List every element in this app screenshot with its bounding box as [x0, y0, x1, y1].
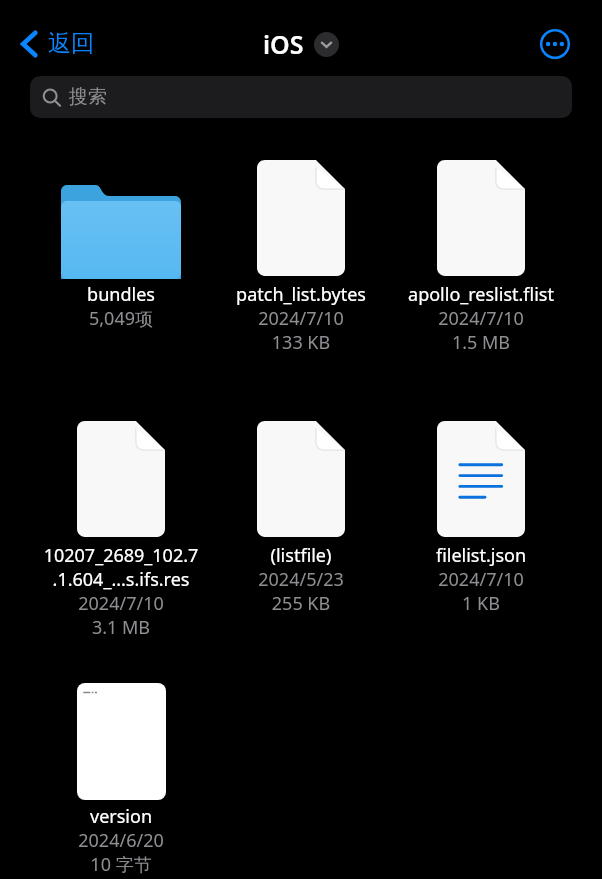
button[interactable]: 返回	[21, 29, 94, 58]
button[interactable]: (listfile) 2024/5/23 255 KB	[211, 420, 391, 616]
staticText: filelist.json 2024/7/10 1 KB	[393, 544, 569, 616]
staticText: apollo_reslist.flist 2024/7/10 1.5 MB	[393, 283, 569, 355]
staticText: bundles 5,049项	[33, 283, 209, 331]
staticText: version 2024/6/20 10 字节	[33, 805, 209, 877]
button[interactable]: version 2024/6/20 10 字节	[31, 681, 211, 877]
staticText: 10207_2689_102.7 .1.604_...s.ifs.res 202…	[33, 544, 209, 640]
staticText: 搜索	[69, 85, 107, 109]
staticText: 返回	[48, 29, 94, 58]
button[interactable]: 搜索	[30, 76, 572, 118]
button[interactable]: bundles 5,049项	[31, 159, 211, 331]
staticText: (listfile) 2024/5/23 255 KB	[213, 544, 389, 616]
staticText: iOS	[263, 27, 304, 61]
button[interactable]: patch_list.bytes 2024/7/10 133 KB	[211, 159, 391, 355]
button[interactable]: iOS	[263, 27, 339, 61]
button[interactable]: apollo_reslist.flist 2024/7/10 1.5 MB	[391, 159, 571, 355]
button[interactable]: 10207_2689_102.7 .1.604_...s.ifs.res 202…	[31, 420, 211, 640]
button[interactable]: More options	[539, 28, 570, 59]
button[interactable]: filelist.json 2024/7/10 1 KB	[391, 420, 571, 616]
staticText: patch_list.bytes 2024/7/10 133 KB	[213, 283, 389, 355]
